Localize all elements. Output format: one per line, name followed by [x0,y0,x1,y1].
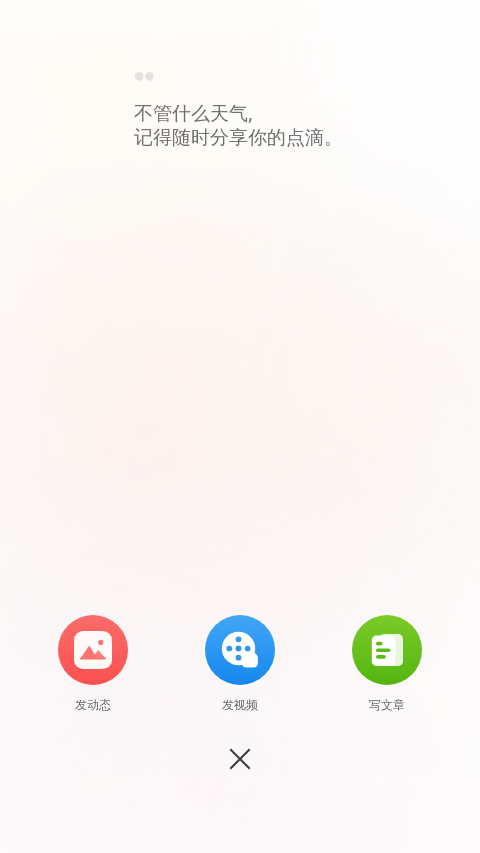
staticText: 记得随时分享你的点滴。 [134,126,343,150]
button[interactable]: 发动态 [48,612,138,712]
button[interactable]: 写文章 [342,612,432,712]
staticText: 发视频 [195,697,285,712]
staticText: 写文章 [342,697,432,712]
staticText: 发动态 [48,697,138,712]
button[interactable]: 发视频 [195,612,285,712]
button[interactable]: 关闭 [216,735,264,783]
staticText: 不管什么天气, [134,100,254,126]
